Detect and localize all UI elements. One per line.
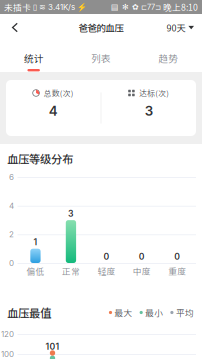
button[interactable]: 列表 <box>67 41 135 72</box>
button[interactable]: 统计 <box>0 41 67 72</box>
staticText: 101 <box>45 341 59 352</box>
staticText: 重度 <box>168 265 186 277</box>
staticText: ⊏77⊐ <box>141 3 161 11</box>
staticText: 晚上8:10 <box>163 1 198 13</box>
staticText: ▯ <box>33 2 37 12</box>
staticText: 100 <box>1 349 14 359</box>
staticText: 120 <box>1 329 14 339</box>
staticText: 正常 <box>62 265 80 277</box>
staticText: 最小 <box>145 306 163 319</box>
staticText: 0 <box>9 258 14 268</box>
staticText: 轻度 <box>97 265 115 277</box>
staticText: 3 <box>68 208 74 219</box>
staticText: ▤ ✻ ✿ <box>111 2 139 12</box>
staticText: 4 <box>9 201 14 211</box>
staticText: 总数(次) <box>44 87 74 99</box>
staticText: 0 <box>103 251 109 262</box>
staticText: 3 <box>145 103 153 119</box>
button[interactable]: 90天 <box>166 14 202 41</box>
staticText: 0 <box>174 251 180 262</box>
staticText: 2 <box>9 230 14 239</box>
staticText: 90天 <box>166 21 185 34</box>
staticText: 平均 <box>176 306 194 319</box>
staticText: 0 <box>139 251 145 262</box>
staticText: 中度 <box>133 265 151 277</box>
staticText: ⚡ <box>77 2 87 12</box>
staticText: 3.41K/s <box>48 2 75 12</box>
staticText: 6 <box>9 172 14 182</box>
staticText: 趋势 <box>158 51 178 65</box>
staticText: ≋ <box>39 2 46 12</box>
staticText: 偏低 <box>26 265 44 277</box>
button[interactable]: 返回 <box>0 14 30 41</box>
staticText: 4 <box>49 103 58 119</box>
staticText: 达标(次) <box>139 87 169 99</box>
staticText: 血压等级分布 <box>7 150 73 167</box>
button[interactable]: 趋势 <box>135 41 202 72</box>
staticText: 血压最值 <box>7 304 51 321</box>
staticText: 1 <box>33 237 37 247</box>
staticText: 未插卡 <box>4 1 31 13</box>
staticText: 统计 <box>24 51 44 65</box>
staticText: 爸爸的血压 <box>78 21 123 34</box>
staticText: 最大 <box>115 306 133 319</box>
staticText: 列表 <box>91 51 111 65</box>
